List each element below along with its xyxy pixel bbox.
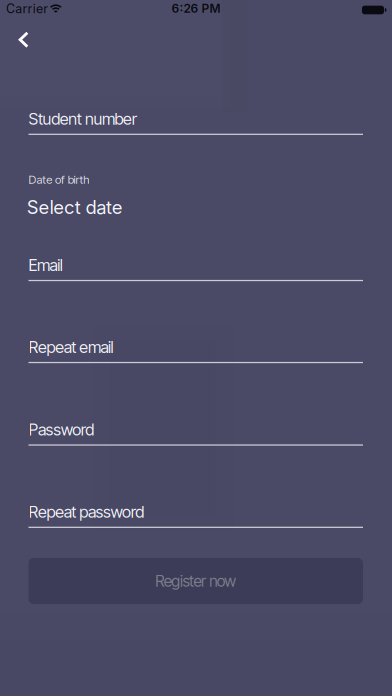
staticText: Carrier <box>6 1 48 16</box>
button[interactable]: Repeat password <box>28 501 363 528</box>
staticText: Repeat email <box>28 337 113 357</box>
button[interactable]: Repeat email <box>28 336 363 364</box>
button[interactable]: Email <box>28 254 363 282</box>
button[interactable]: Register now <box>28 558 363 604</box>
staticText: Password <box>28 420 94 439</box>
staticText: Repeat password <box>28 502 144 522</box>
button[interactable]: Student number <box>28 108 363 136</box>
staticText: Date of birth <box>28 173 89 186</box>
staticText: Email <box>28 255 63 275</box>
staticText: 6:26 PM <box>171 1 220 16</box>
staticText: Register now <box>155 572 236 590</box>
button[interactable]: Select date <box>27 196 123 218</box>
button[interactable]: Back <box>11 24 41 55</box>
button[interactable]: Password <box>28 419 363 446</box>
staticText: Student number <box>28 109 137 129</box>
staticText: Select date <box>27 196 123 218</box>
